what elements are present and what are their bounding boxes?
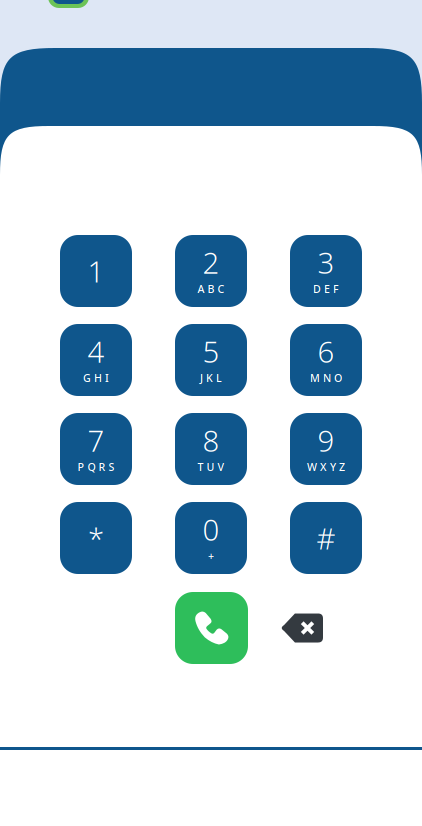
staticText: 0 (202, 510, 219, 549)
button[interactable]: Call (175, 592, 248, 664)
button[interactable]: 4 (60, 324, 132, 396)
staticText: 2 (202, 243, 219, 282)
staticText: W X Y Z (307, 460, 345, 474)
staticText: 6 (317, 332, 334, 371)
button[interactable]: # (290, 502, 362, 574)
button[interactable]: 1 (60, 235, 132, 307)
button[interactable]: 9 (290, 413, 362, 485)
staticText: 8 (202, 421, 219, 460)
staticText: 4 (87, 332, 104, 371)
staticText: * (88, 518, 104, 557)
staticText: 5 (202, 332, 219, 371)
staticText: T U V (197, 460, 224, 474)
staticText: 9 (317, 421, 334, 460)
button[interactable]: 7 (60, 413, 132, 485)
staticText: P Q R S (77, 460, 114, 474)
button[interactable]: 0 (175, 502, 247, 574)
staticText: + (208, 549, 214, 563)
button[interactable]: * (60, 502, 132, 574)
staticText: 7 (87, 421, 104, 460)
button[interactable]: 8 (175, 413, 247, 485)
staticText: M N O (310, 371, 342, 385)
button[interactable]: 5 (175, 324, 247, 396)
staticText: G H I (83, 371, 109, 385)
staticText: D E F (313, 282, 339, 296)
staticText: 1 (87, 251, 104, 290)
button[interactable]: 3 (290, 235, 362, 307)
staticText: 3 (317, 243, 334, 282)
staticText: # (316, 518, 335, 557)
button[interactable]: 2 (175, 235, 247, 307)
button[interactable]: Delete (248, 592, 320, 664)
staticText: A B C (197, 282, 224, 296)
button[interactable]: 6 (290, 324, 362, 396)
staticText: J K L (200, 371, 222, 385)
